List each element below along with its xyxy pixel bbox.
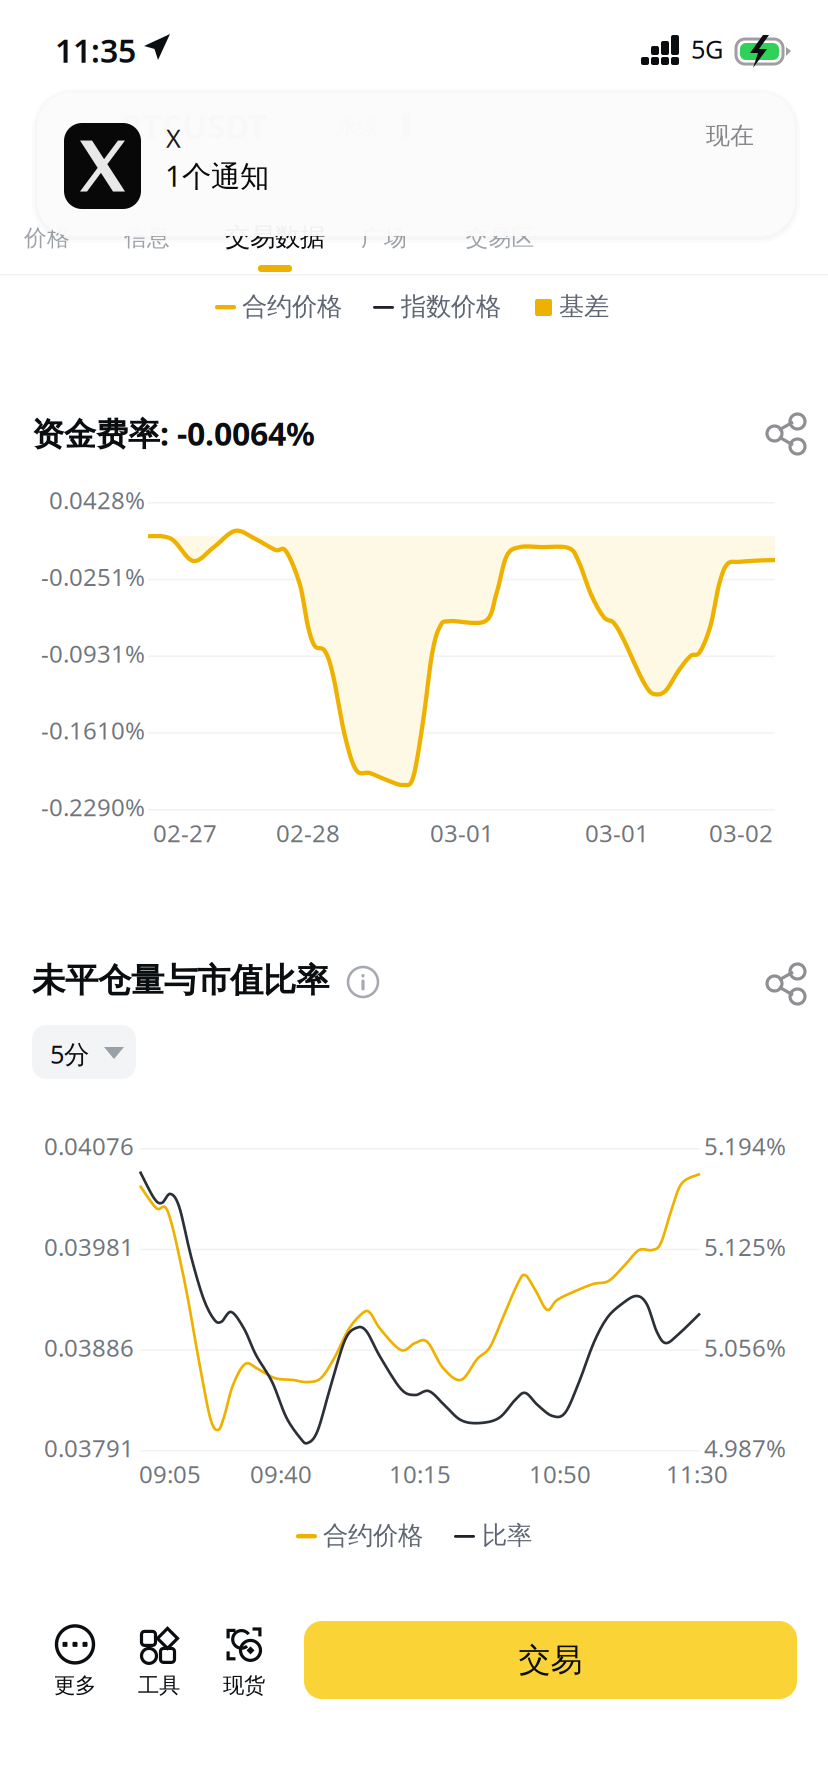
staticText: 11:30 [666,1458,728,1490]
button[interactable]: 交易区 [451,216,549,260]
staticText: 10:50 [529,1458,591,1490]
staticText: 资金费率: -0.0064% [32,412,315,454]
staticText: 4.987% [704,1432,786,1464]
staticText: 合约价格 [323,1520,423,1551]
staticText: 02-27 [153,817,217,849]
staticText: -0.0251% [41,561,145,593]
button[interactable]: 交易 [304,1621,797,1699]
button[interactable]: 5分 [32,1025,136,1079]
button[interactable]: 分享 [766,412,808,456]
button[interactable]: X [37,92,805,246]
staticText: -0.1610% [41,714,145,746]
staticText: 03-02 [709,817,773,849]
staticText: 交易区 [465,224,534,252]
staticText: 5.194% [704,1130,786,1162]
staticText: -0.0931% [41,638,145,669]
staticText: 5G [691,32,723,66]
staticText: 0.04076 [44,1130,134,1162]
staticText: 现在 [706,121,754,150]
staticText: 09:40 [250,1458,312,1490]
button[interactable]: 价格 [12,216,82,260]
staticText: 比率 [482,1520,532,1551]
button[interactable]: 广场 [349,216,419,260]
staticText: 未平仓量与市值比率 [32,960,329,1001]
staticText: 信息 [124,224,170,252]
staticText: 合约价格 [242,291,342,322]
staticText: 更多 [54,1672,96,1699]
staticText: 02-28 [276,817,340,849]
staticText: 价格 [24,224,70,252]
staticText: 基差 [559,291,609,322]
staticText: 1个通知 [165,156,269,195]
staticText: 广场 [361,224,407,252]
staticText: 交易 [518,1640,582,1680]
button[interactable]: 工具 [119,1623,199,1703]
staticText: 11:35 [55,29,136,71]
button[interactable]: 分享 [766,962,808,1006]
staticText: 指数价格 [401,291,501,322]
staticText: BTCUSDT [120,104,267,148]
staticText: 0.03886 [44,1331,134,1363]
staticText: 0.03981 [44,1231,134,1263]
staticText: 工具 [138,1672,180,1699]
staticText: 03-01 [430,817,494,849]
staticText: 交易数据 [225,221,325,252]
staticText: 0.03791 [44,1432,134,1464]
staticText: X [166,121,181,155]
staticText: 03-01 [585,817,649,849]
button[interactable]: 更多 [35,1622,115,1702]
staticText: 5分 [50,1037,89,1071]
staticText: 5.125% [704,1231,786,1263]
staticText: 5.056% [704,1331,786,1363]
staticText: 10:15 [389,1458,451,1490]
staticText: -0.2290% [41,791,145,823]
button[interactable]: 现货 [204,1623,284,1703]
staticText: 09:05 [139,1458,201,1490]
button[interactable]: 信息 [112,216,182,260]
button[interactable]: 交易数据 [212,215,338,259]
staticText: 0.0428% [49,484,145,516]
staticText: 现货 [223,1672,265,1699]
